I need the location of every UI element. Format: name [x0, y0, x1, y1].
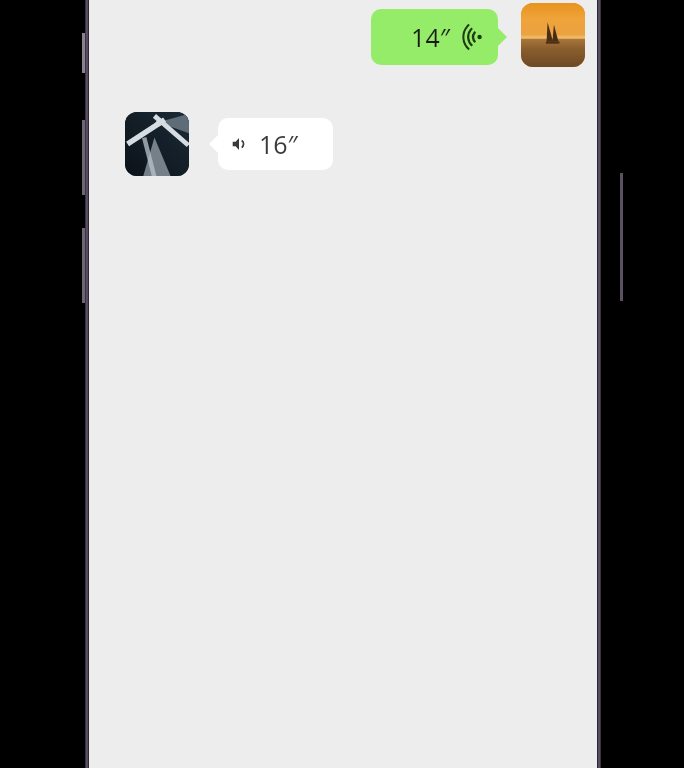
staticText: 16″ — [259, 127, 298, 161]
button[interactable]: 16″ — [209, 118, 333, 170]
staticText: 14″ — [411, 20, 450, 54]
button[interactable]: Contact avatar — [521, 3, 585, 67]
button[interactable]: 14″ — [371, 9, 507, 65]
button[interactable]: Your avatar — [125, 112, 189, 176]
